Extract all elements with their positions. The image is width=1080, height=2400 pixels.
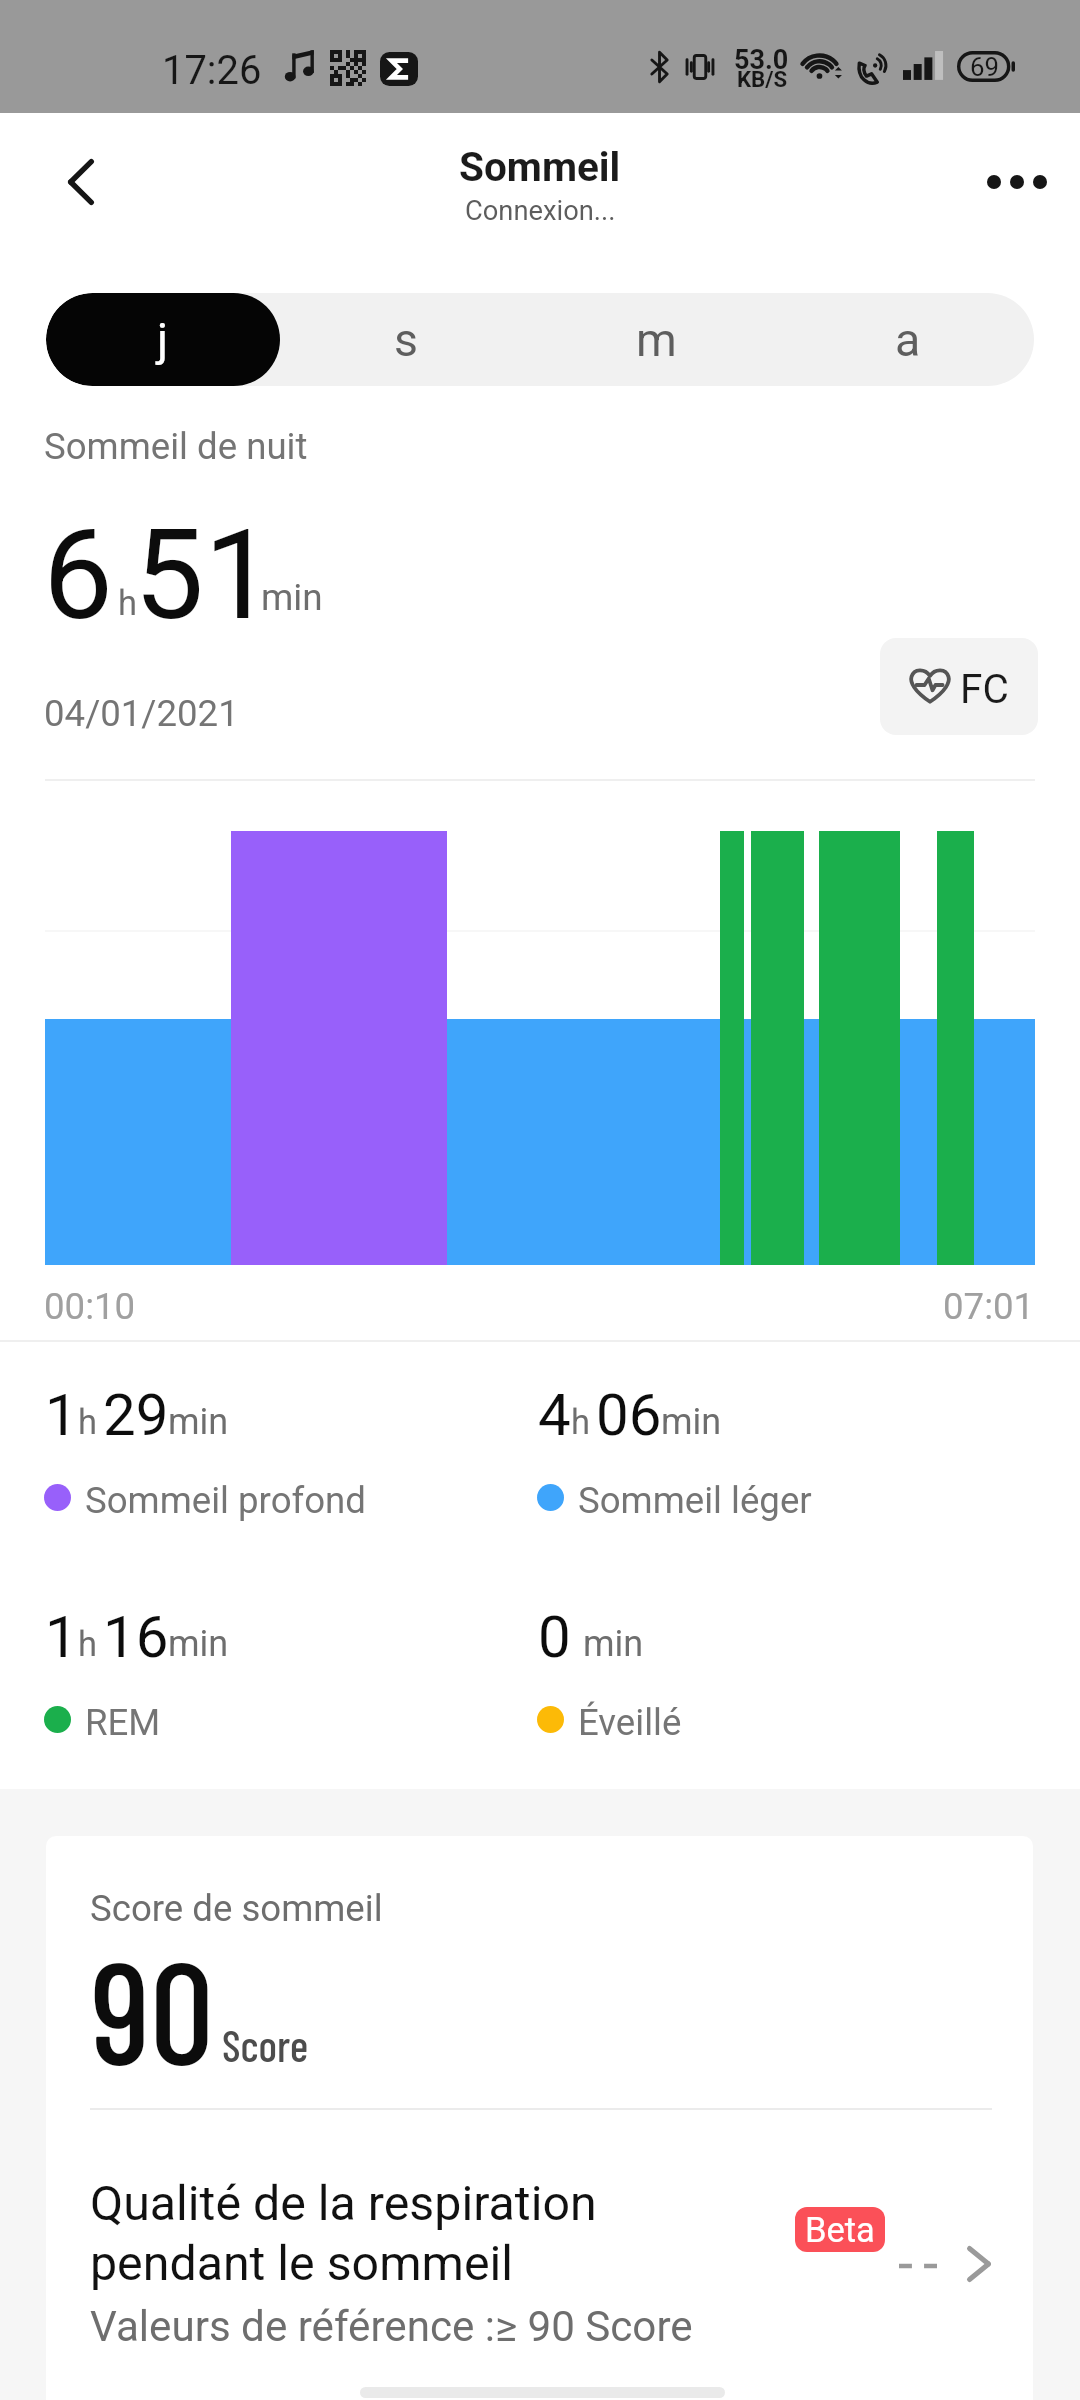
staticText: 00:10 — [44, 1285, 136, 1328]
staticText: REM — [85, 1701, 161, 1744]
staticText: 06 — [596, 1381, 662, 1449]
staticText: h — [78, 1402, 98, 1442]
staticText: 6 — [43, 502, 113, 648]
staticText: Sommeil profond — [85, 1479, 366, 1522]
staticText: Beta — [805, 2210, 875, 2250]
staticText: 29 — [103, 1381, 169, 1449]
staticText: Sommeil de nuit — [44, 425, 308, 468]
button[interactable]: FC — [880, 638, 1038, 735]
staticText: 51 — [134, 502, 274, 648]
staticText: FC — [960, 665, 1009, 712]
staticText: 69 — [970, 52, 999, 82]
staticText: Sommeil — [459, 143, 621, 190]
staticText: 90 — [91, 1922, 214, 2093]
button[interactable]: j — [46, 293, 280, 386]
staticText: 16 — [103, 1603, 169, 1671]
staticText: Valeurs de référence :≥ 90 Score — [90, 2302, 693, 2351]
staticText: Score — [222, 2018, 309, 2070]
staticText: Éveillé — [578, 1701, 682, 1744]
staticText: s — [394, 313, 418, 367]
staticText: h — [78, 1624, 98, 1664]
staticText: h — [118, 583, 138, 623]
staticText: a — [895, 313, 921, 367]
staticText: Qualité de la respiration — [90, 2175, 597, 2232]
staticText: min — [261, 576, 323, 619]
staticText: 1 — [45, 1381, 78, 1449]
button[interactable]: a — [782, 293, 1034, 386]
staticText: h — [571, 1402, 591, 1442]
button[interactable]: More options — [957, 121, 1077, 241]
staticText: min — [168, 1623, 229, 1665]
staticText: 04/01/2021 — [44, 692, 239, 735]
button[interactable]: Qualité de la respiration — [46, 2166, 1033, 2400]
staticText: KB/S — [737, 66, 788, 92]
button[interactable]: m — [531, 293, 782, 386]
staticText: min — [661, 1401, 722, 1443]
staticText: 17:26 — [162, 47, 262, 94]
staticText: 07:01 — [943, 1285, 1035, 1328]
button[interactable]: s — [280, 293, 531, 386]
staticText: Sommeil léger — [578, 1479, 812, 1522]
staticText: Connexion... — [465, 195, 616, 227]
staticText: Score de sommeil — [90, 1887, 383, 1930]
staticText: m — [636, 313, 677, 367]
staticText: min — [168, 1401, 229, 1443]
staticText: min — [583, 1623, 644, 1665]
staticText: 0 — [538, 1603, 571, 1671]
staticText: j — [157, 313, 169, 367]
staticText: pendant le sommeil — [90, 2235, 513, 2292]
staticText: 1 — [45, 1603, 78, 1671]
button[interactable]: Back — [21, 122, 141, 242]
staticText: 53.0 — [734, 44, 789, 76]
staticText: 4 — [538, 1381, 571, 1449]
